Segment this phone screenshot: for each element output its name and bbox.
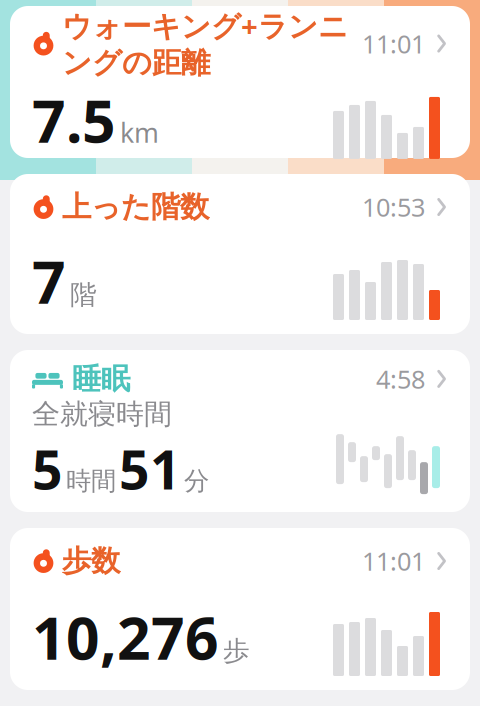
staticText: 7 (32, 242, 66, 320)
staticText: km (120, 115, 159, 150)
staticText: 歩 (223, 635, 250, 667)
staticText: 5 (32, 433, 63, 504)
staticText: 時間 (66, 465, 116, 496)
button[interactable]: ウォーキング+ランニングの距離 (10, 6, 470, 158)
staticText: 51 (119, 433, 181, 504)
button[interactable]: 睡眠 (10, 350, 470, 512)
staticText: 11:01 (362, 544, 425, 578)
staticText: 11:01 (362, 27, 425, 60)
staticText: 階 (70, 279, 97, 311)
staticText: 7.5 (32, 81, 116, 159)
button[interactable]: 上った階数 (10, 174, 470, 334)
staticText: 全就寝時間 (32, 397, 172, 431)
staticText: ウォーキング+ランニングの距離 (62, 6, 348, 81)
staticText: 分 (184, 465, 209, 496)
staticText: 4:58 (376, 362, 425, 396)
staticText: 10,276 (32, 598, 219, 676)
staticText: 歩数 (62, 543, 120, 579)
staticText: 10:53 (362, 190, 425, 224)
button[interactable]: 歩数 (10, 528, 470, 690)
staticText: 睡眠 (72, 361, 130, 397)
staticText: 上った階数 (62, 189, 209, 225)
